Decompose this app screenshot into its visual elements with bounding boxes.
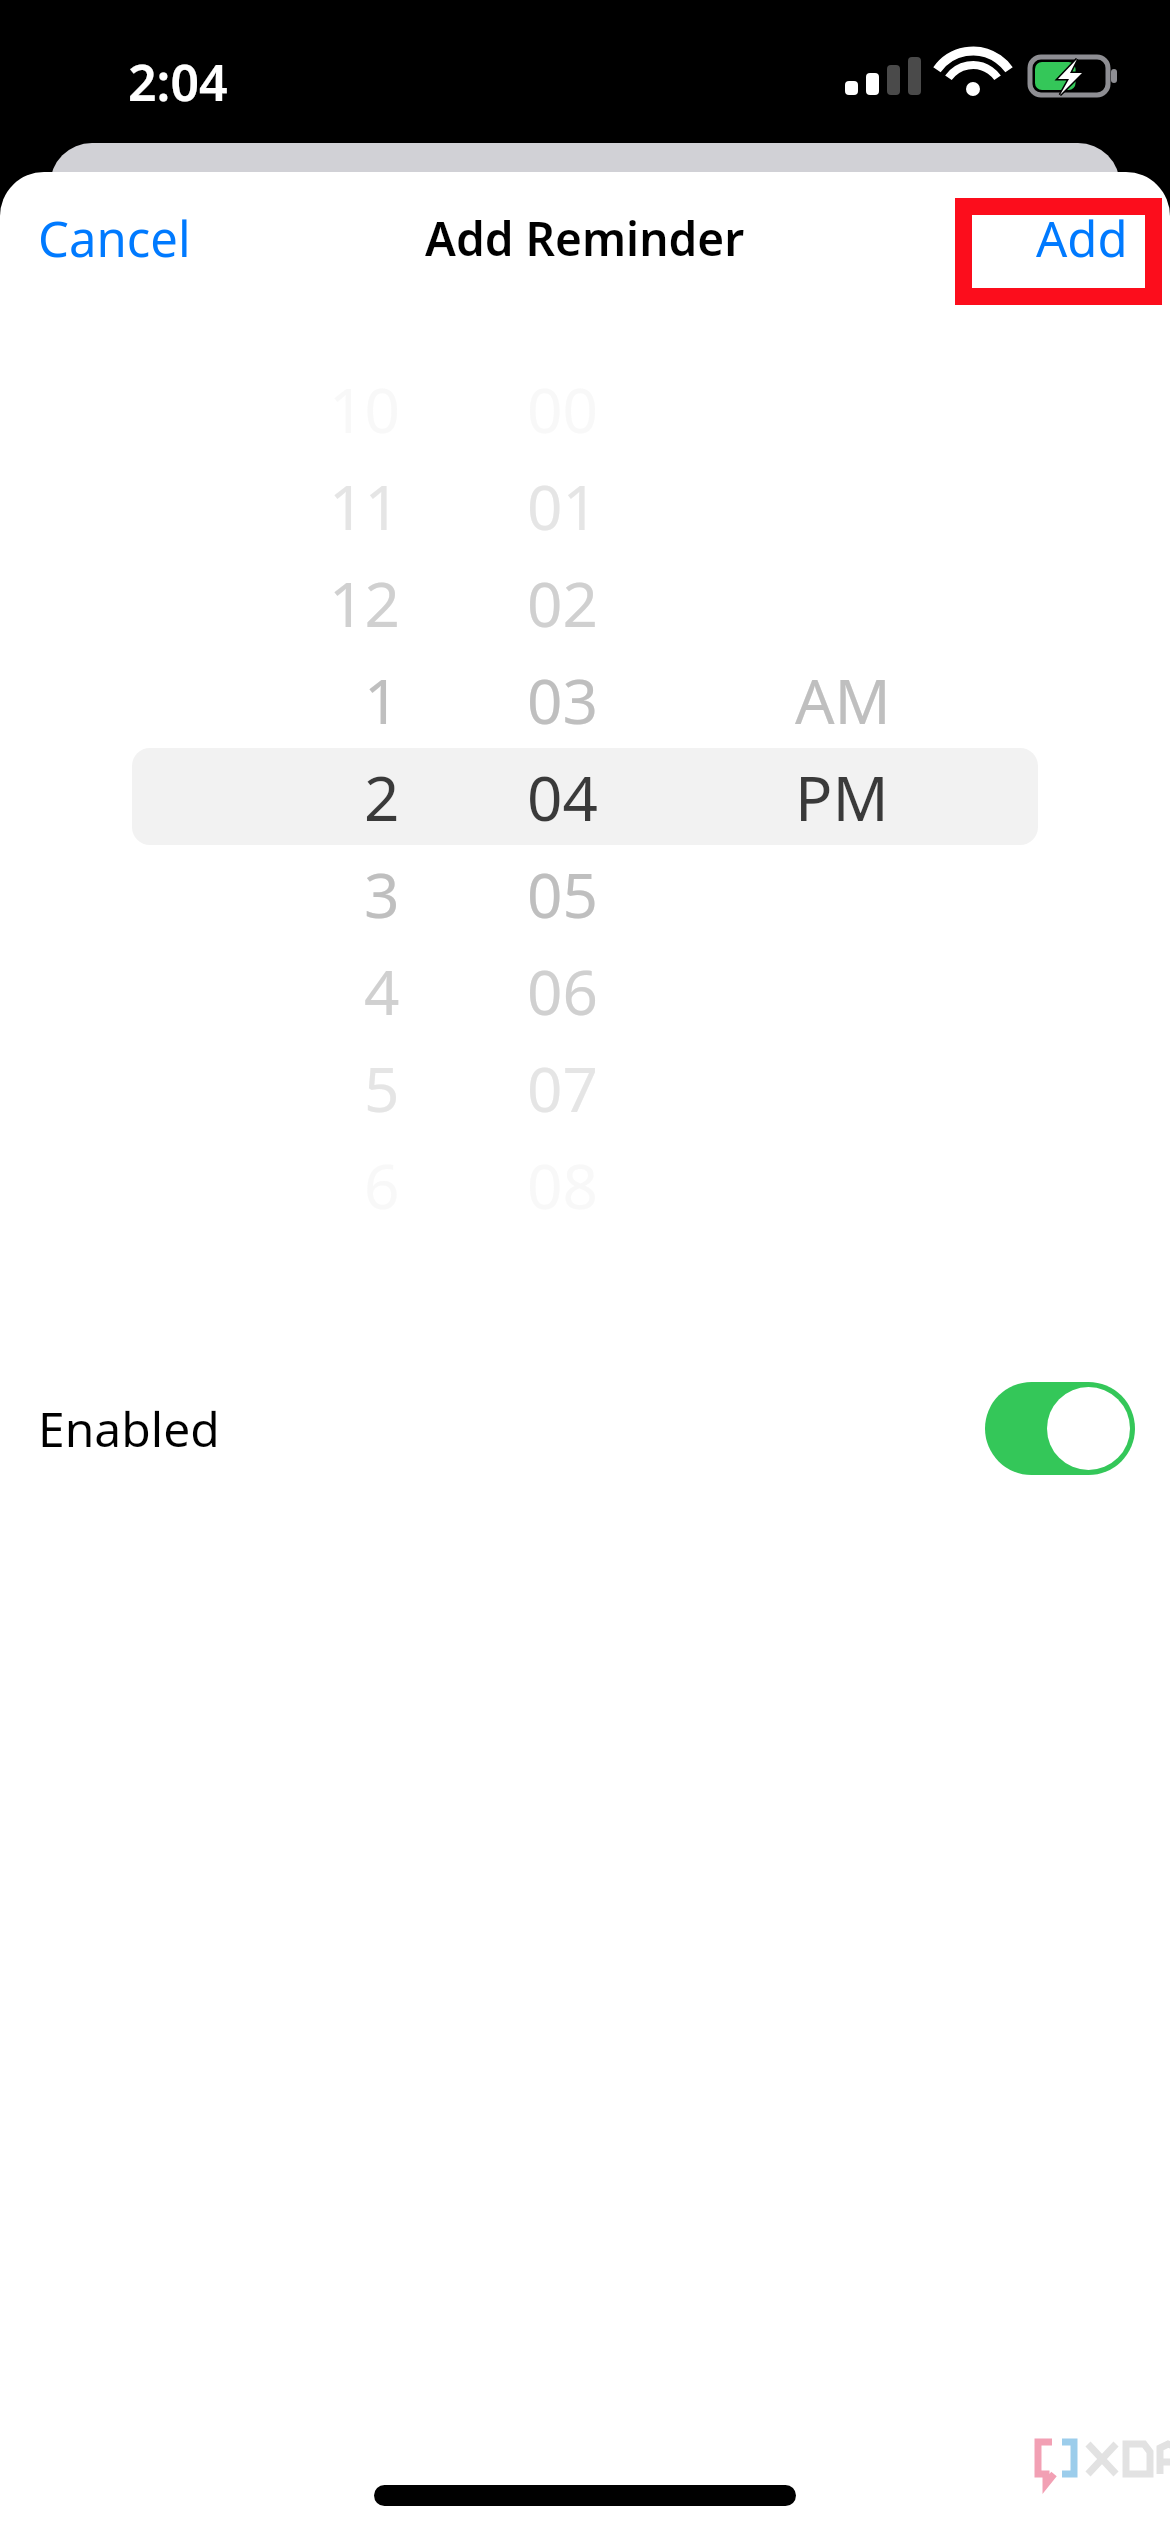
staticText: 04	[527, 755, 598, 839]
staticText: 1	[364, 658, 400, 742]
staticText: Enabled	[38, 1396, 220, 1461]
staticText: 01	[527, 464, 598, 548]
staticText: 5	[364, 1046, 400, 1130]
other: Enabled toggle, on	[985, 1382, 1135, 1475]
staticText: 2:04	[128, 48, 228, 116]
staticText: 07	[527, 1046, 598, 1130]
staticText: 2	[364, 755, 400, 839]
staticText: Add Reminder	[425, 207, 745, 270]
staticText: 03	[527, 658, 598, 742]
staticText: 4	[364, 949, 400, 1033]
staticText: PM	[795, 755, 889, 839]
staticText: 11	[329, 464, 400, 548]
staticText: AM	[795, 658, 891, 742]
staticText: 06	[527, 949, 598, 1033]
staticText: 05	[527, 852, 598, 936]
staticText: Cancel	[38, 205, 191, 272]
button[interactable]: Cancel	[0, 189, 221, 288]
staticText: 12	[329, 561, 400, 645]
button[interactable]: Enabled	[0, 1358, 1170, 1498]
button[interactable]: 10	[0, 360, 1170, 1233]
staticText: 3	[364, 852, 400, 936]
staticText: 02	[527, 561, 598, 645]
staticText: Add	[1036, 205, 1128, 272]
button[interactable]: Add	[1006, 189, 1170, 288]
